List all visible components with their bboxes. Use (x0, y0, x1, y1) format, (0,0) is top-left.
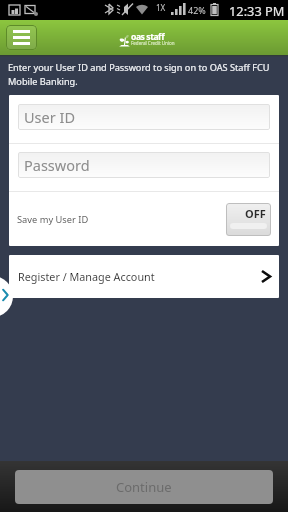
staticText: 1X (156, 2, 166, 13)
button[interactable]: User ID (18, 104, 270, 130)
staticText: Save my User ID (17, 213, 89, 226)
staticText: oas staff (131, 31, 165, 43)
button[interactable]: OFF (226, 203, 271, 236)
staticText: 42% (188, 4, 206, 16)
staticText: OFF (245, 206, 266, 221)
button[interactable]: Register / Manage Account (9, 255, 279, 298)
staticText: Password (24, 155, 90, 175)
staticText: 12:33 PM (229, 2, 285, 19)
staticText: Register / Manage Account (18, 269, 155, 284)
staticText: Continue (116, 478, 172, 496)
button[interactable]: Menu (6, 25, 37, 50)
button[interactable]: Continue (15, 470, 273, 504)
button[interactable]: Open navigation drawer (0, 276, 13, 317)
staticText: User ID (24, 107, 75, 127)
button[interactable]: Password (18, 152, 270, 178)
staticText: Federal Credit Union (131, 40, 175, 46)
staticText: Enter your User ID and Password to sign … (8, 61, 276, 88)
